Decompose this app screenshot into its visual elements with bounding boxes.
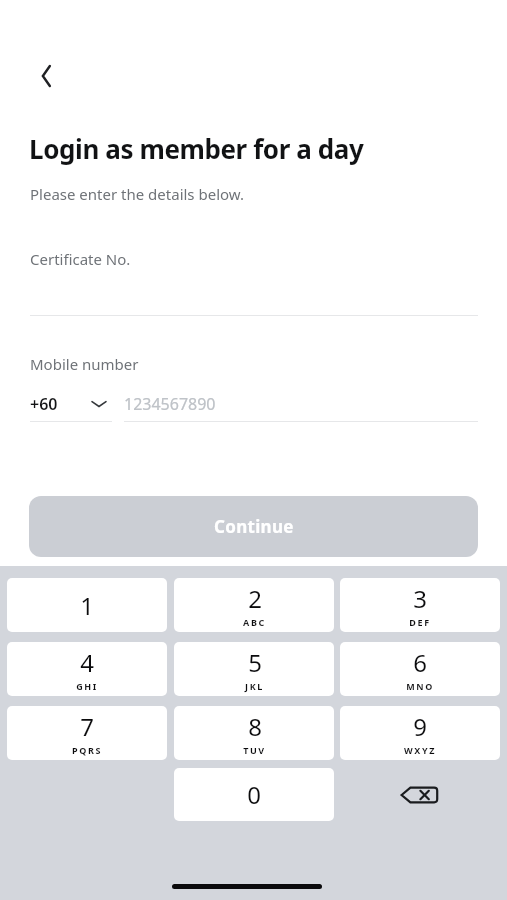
button[interactable]: 0: [174, 768, 334, 821]
button[interactable]: 1234567890: [124, 386, 478, 422]
button[interactable]: 7: [7, 706, 167, 760]
staticText: 1: [80, 589, 94, 622]
button[interactable]: Continue: [29, 496, 478, 557]
staticText: JKL: [245, 680, 264, 692]
staticText: Certificate No.: [30, 249, 131, 269]
button[interactable]: 1: [7, 578, 167, 632]
staticText: 7: [80, 710, 94, 743]
staticText: WXYZ: [404, 744, 436, 756]
button[interactable]: 4: [7, 642, 167, 696]
staticText: 2: [248, 582, 262, 615]
staticText: Login as member for a day: [29, 131, 364, 166]
staticText: 5: [248, 646, 262, 679]
button[interactable]: 6: [340, 642, 500, 696]
staticText: GHI: [76, 680, 98, 692]
staticText: 6: [413, 646, 427, 679]
staticText: Continue: [214, 515, 294, 538]
button[interactable]: Backspace: [340, 768, 500, 821]
staticText: 1234567890: [124, 393, 216, 415]
button[interactable]: +60: [30, 386, 112, 422]
staticText: 4: [80, 646, 94, 679]
button[interactable]: 2: [174, 578, 334, 632]
staticText: 0: [247, 778, 261, 811]
button[interactable]: 8: [174, 706, 334, 760]
button[interactable]: 5: [174, 642, 334, 696]
staticText: 8: [248, 710, 262, 743]
staticText: +60: [30, 393, 58, 415]
staticText: Please enter the details below.: [30, 184, 244, 204]
staticText: PQRS: [72, 744, 102, 756]
staticText: TUV: [243, 744, 266, 756]
staticText: 9: [413, 710, 427, 743]
button[interactable]: 3: [340, 578, 500, 632]
staticText: ABC: [243, 616, 266, 628]
staticText: 3: [413, 582, 427, 615]
button[interactable]: Back: [22, 56, 70, 96]
staticText: MNO: [406, 680, 434, 692]
button[interactable]: 9: [340, 706, 500, 760]
staticText: DEF: [409, 616, 431, 628]
button[interactable]: [30, 240, 478, 316]
staticText: Mobile number: [30, 354, 139, 374]
